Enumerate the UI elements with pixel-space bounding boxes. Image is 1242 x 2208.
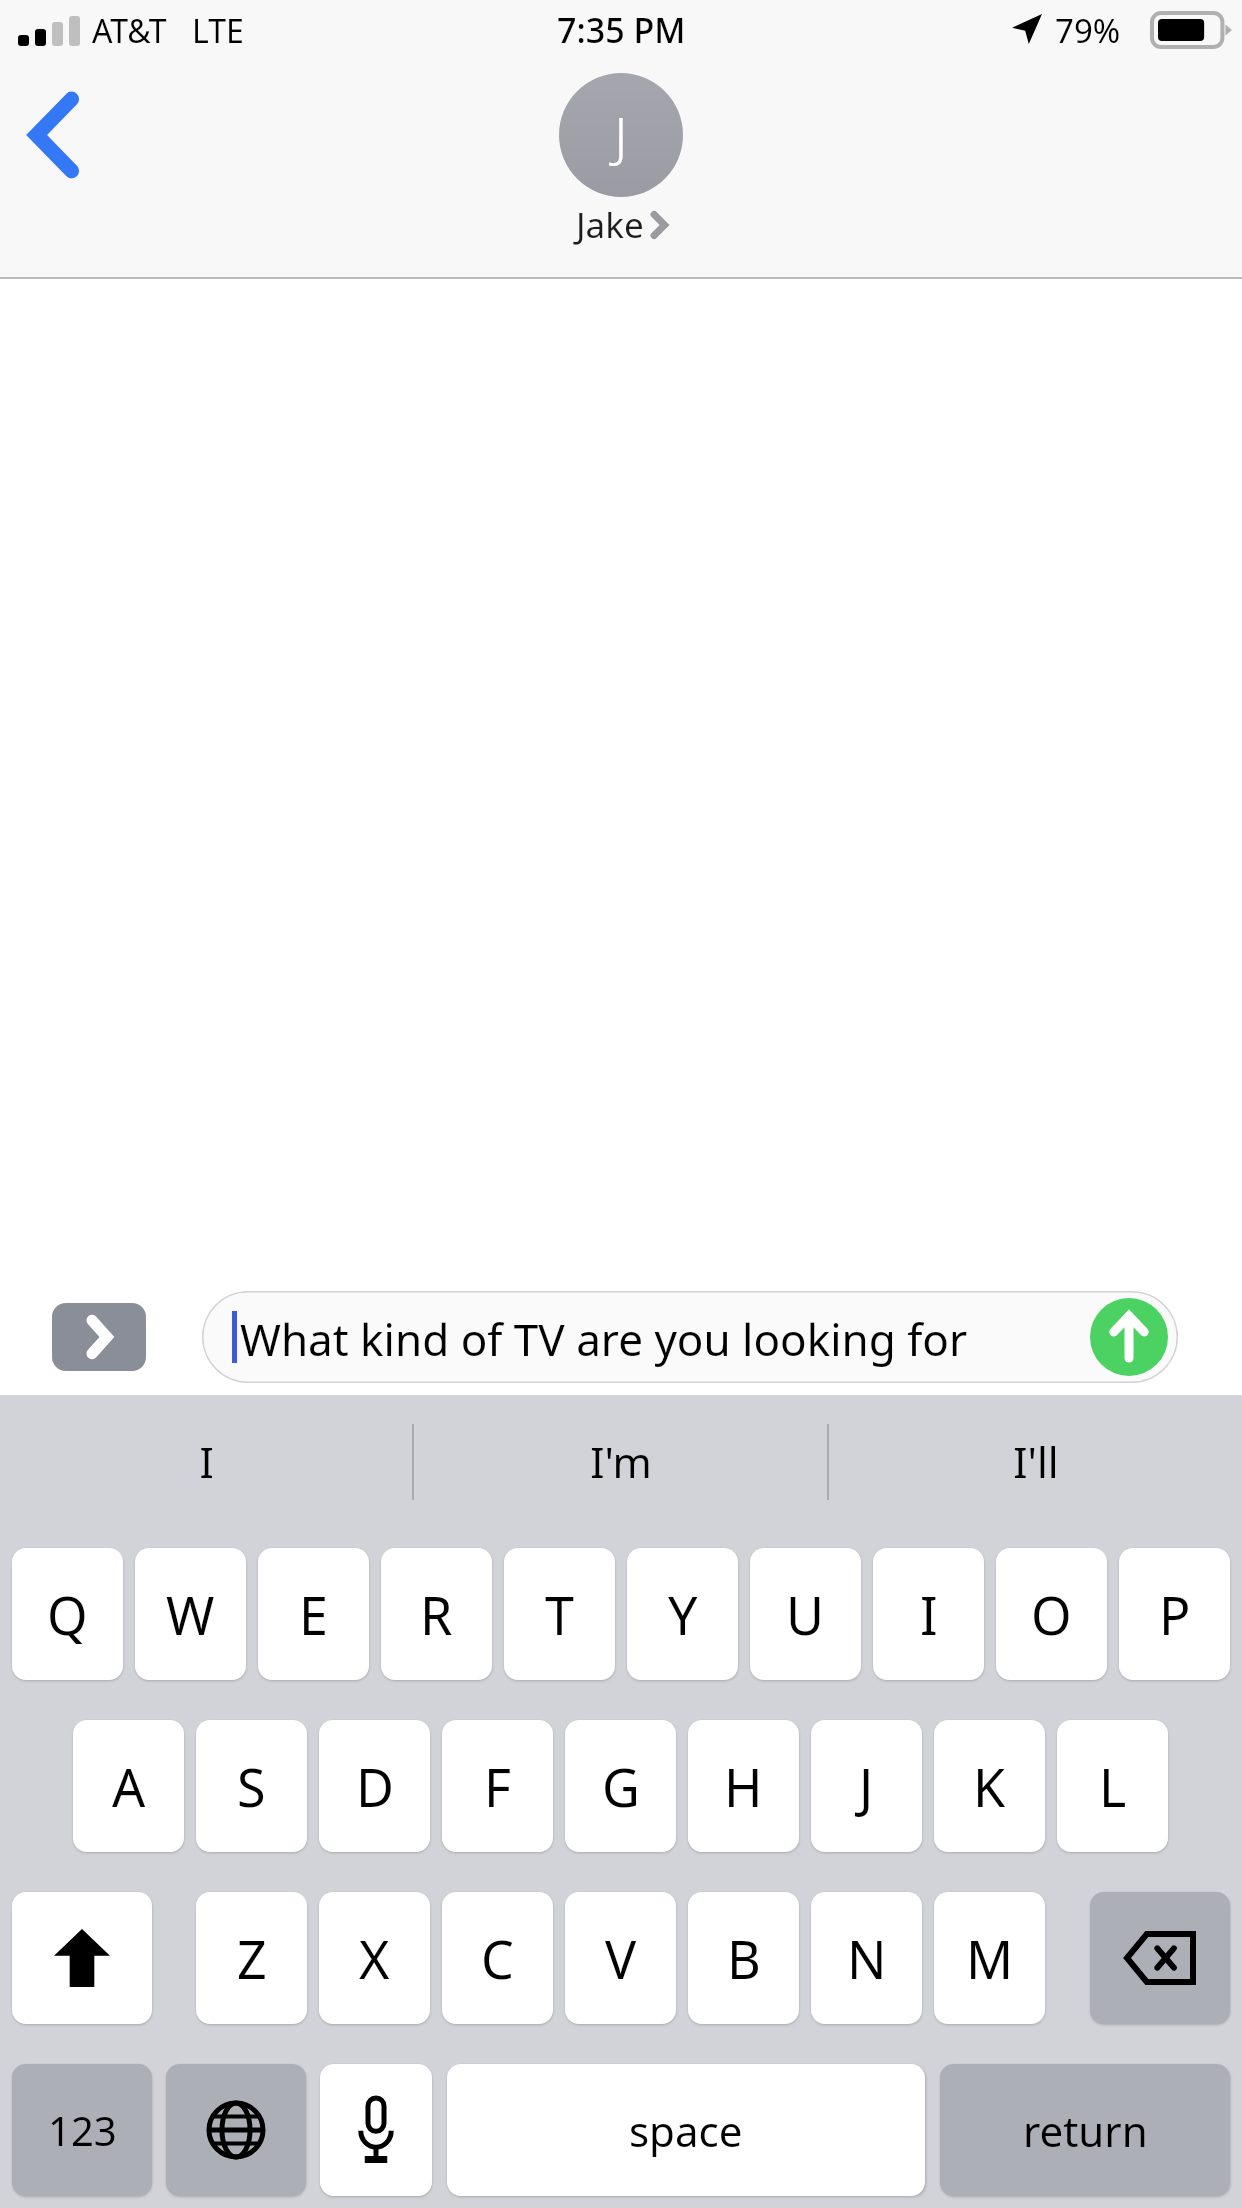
button[interactable]: P — [1119, 1548, 1230, 1680]
button[interactable]: U — [750, 1548, 861, 1680]
button[interactable]: Back — [14, 86, 96, 184]
staticText: Z — [237, 1923, 267, 1994]
staticText: R — [420, 1579, 453, 1650]
button[interactable]: D — [319, 1720, 430, 1852]
staticText: What kind of TV are you looking for — [240, 1309, 968, 1369]
staticText: I'll — [1013, 1433, 1059, 1490]
button[interactable]: Backspace — [1090, 1892, 1230, 2024]
staticText: A — [112, 1751, 146, 1822]
staticText: K — [973, 1751, 1006, 1822]
staticText: V — [605, 1923, 637, 1994]
staticText: O — [1031, 1579, 1072, 1650]
staticText: space — [629, 2102, 743, 2159]
staticText: LTE — [192, 9, 244, 53]
staticText: T — [545, 1579, 574, 1650]
button[interactable]: What kind of TV are you looking for — [202, 1291, 1178, 1383]
button[interactable]: K — [934, 1720, 1045, 1852]
staticText: S — [237, 1751, 266, 1822]
button[interactable]: Change keyboard — [166, 2064, 306, 2196]
staticText: G — [602, 1751, 640, 1822]
staticText: P — [1159, 1579, 1191, 1650]
button[interactable]: X — [319, 1892, 430, 2024]
button[interactable]: I'm — [414, 1395, 827, 1528]
staticText: Y — [668, 1579, 698, 1650]
button[interactable]: E — [258, 1548, 369, 1680]
button[interactable]: M — [934, 1892, 1045, 2024]
button[interactable]: N — [811, 1892, 922, 2024]
button[interactable]: L — [1057, 1720, 1168, 1852]
button[interactable]: Shift — [12, 1892, 152, 2024]
button[interactable]: Show apps — [52, 1303, 146, 1371]
staticText: Q — [47, 1579, 88, 1650]
button[interactable]: C — [442, 1892, 553, 2024]
button[interactable]: Z — [196, 1892, 307, 2024]
staticText: L — [1099, 1751, 1127, 1822]
staticText: W — [166, 1579, 215, 1650]
staticText: C — [481, 1923, 514, 1994]
button[interactable]: Dictation — [320, 2064, 432, 2196]
button[interactable]: Jake — [559, 73, 683, 249]
staticText: B — [727, 1923, 761, 1994]
button[interactable]: V — [565, 1892, 676, 2024]
button[interactable]: W — [135, 1548, 246, 1680]
staticText: E — [299, 1579, 328, 1650]
staticText: I — [199, 1433, 214, 1490]
button[interactable]: R — [381, 1548, 492, 1680]
button[interactable]: I — [0, 1395, 412, 1528]
button[interactable]: I'll — [829, 1395, 1242, 1528]
button[interactable]: Send — [1090, 1298, 1168, 1376]
button[interactable]: F — [442, 1720, 553, 1852]
staticText: I — [920, 1579, 938, 1650]
staticText: U — [786, 1579, 825, 1650]
button[interactable]: G — [565, 1720, 676, 1852]
staticText: D — [356, 1751, 394, 1822]
button[interactable]: Q — [12, 1548, 123, 1680]
staticText: X — [359, 1923, 390, 1994]
button[interactable]: H — [688, 1720, 799, 1852]
button[interactable]: B — [688, 1892, 799, 2024]
staticText: AT&T — [92, 9, 167, 53]
button[interactable]: I — [873, 1548, 984, 1680]
button[interactable]: 123 — [12, 2064, 152, 2196]
button[interactable]: T — [504, 1548, 615, 1680]
staticText: Jake — [576, 201, 644, 249]
staticText: H — [724, 1751, 763, 1822]
button[interactable]: space — [447, 2064, 925, 2196]
staticText: 123 — [48, 2103, 117, 2157]
staticText: I'm — [590, 1433, 652, 1490]
button[interactable]: A — [73, 1720, 184, 1852]
staticText: J — [614, 98, 628, 172]
staticText: F — [484, 1751, 511, 1822]
staticText: return — [1023, 2102, 1148, 2159]
staticText: 7:35 PM — [557, 7, 686, 53]
button[interactable]: S — [196, 1720, 307, 1852]
staticText: 79% — [1055, 8, 1121, 53]
button[interactable]: return — [940, 2064, 1230, 2196]
staticText: J — [859, 1751, 874, 1822]
button[interactable]: J — [811, 1720, 922, 1852]
button[interactable]: O — [996, 1548, 1107, 1680]
button[interactable]: Y — [627, 1548, 738, 1680]
staticText: N — [847, 1923, 887, 1994]
staticText: M — [966, 1923, 1014, 1994]
